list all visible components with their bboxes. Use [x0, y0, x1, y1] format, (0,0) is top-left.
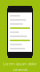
staticText: sit amet: [13, 67, 27, 72]
staticText: Lorem ipsum dolor: [3, 61, 37, 66]
